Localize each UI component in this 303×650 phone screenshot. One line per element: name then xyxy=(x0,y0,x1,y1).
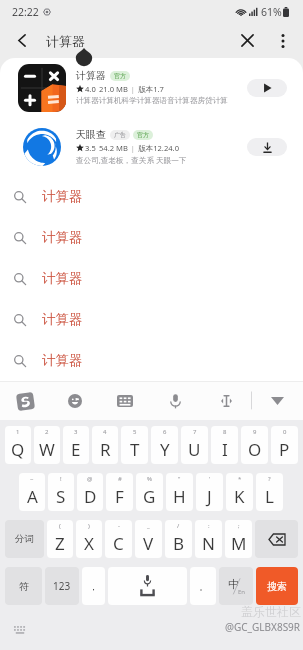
staticText: _ xyxy=(147,522,150,530)
staticText: ? xyxy=(268,475,271,483)
staticText: 版本12.24.0 xyxy=(138,143,179,153)
button[interactable]: 6 xyxy=(151,426,178,464)
button[interactable]: : xyxy=(195,520,222,558)
button[interactable]: ( xyxy=(47,520,73,558)
button[interactable]: _ xyxy=(135,520,162,558)
staticText: ~ xyxy=(30,475,34,483)
staticText: | xyxy=(131,85,135,94)
button[interactable]: 计算器 xyxy=(0,258,303,299)
button[interactable]: ~ xyxy=(19,473,45,511)
staticText: ) xyxy=(88,522,90,530)
button[interactable]: 天眼查 xyxy=(0,117,303,176)
button[interactable]: Close xyxy=(230,23,264,58)
button[interactable]: ) xyxy=(76,520,102,558)
staticText: G xyxy=(143,485,156,508)
button[interactable]: 搜索 xyxy=(256,567,298,605)
button[interactable]: Play video xyxy=(247,79,287,97)
staticText: 。 xyxy=(199,581,208,592)
button[interactable]: % xyxy=(136,473,163,511)
button[interactable]: " xyxy=(166,473,193,511)
staticText: P xyxy=(279,438,290,461)
button[interactable]: 4 xyxy=(92,426,118,464)
staticText: S xyxy=(56,485,66,508)
button[interactable]: - xyxy=(105,520,132,558)
staticText: I xyxy=(222,438,228,461)
staticText: N xyxy=(202,532,215,555)
button[interactable]: * xyxy=(226,473,253,511)
button[interactable]: 计算器 xyxy=(0,340,303,381)
button[interactable]: 计算器 xyxy=(0,217,303,258)
staticText: 2 xyxy=(45,428,49,436)
staticText: Z xyxy=(55,532,65,555)
staticText: 7 xyxy=(193,428,197,436)
button[interactable]: ' xyxy=(196,473,223,511)
button[interactable]: 符 xyxy=(5,567,42,605)
staticText: 3 xyxy=(74,428,78,436)
button[interactable]: ? xyxy=(256,473,283,511)
button[interactable]: ! xyxy=(48,473,74,511)
staticText: Y xyxy=(160,438,170,461)
button[interactable]: 8 xyxy=(211,426,238,464)
button[interactable]: 计算器 xyxy=(0,58,303,117)
staticText: ( xyxy=(59,522,61,530)
button[interactable]: 7 xyxy=(181,426,208,464)
staticText: ! xyxy=(60,475,62,483)
button[interactable]: Move cursor xyxy=(201,382,252,420)
button[interactable]: More options xyxy=(270,23,296,58)
staticText: X xyxy=(84,532,94,555)
button[interactable]: Backspace xyxy=(255,520,298,558)
button[interactable]: @ xyxy=(77,473,103,511)
staticText: @GC_GLBX8S9R xyxy=(225,620,301,634)
staticText: V xyxy=(143,532,154,555)
button[interactable]: 2 xyxy=(34,426,60,464)
button[interactable]: 计算器 xyxy=(0,299,303,340)
button[interactable]: Emoji xyxy=(50,382,100,420)
button[interactable]: 中 xyxy=(219,567,253,605)
button[interactable]: 9 xyxy=(241,426,268,464)
staticText: # xyxy=(118,475,122,483)
button[interactable]: Download xyxy=(247,138,287,156)
button[interactable]: Voice input xyxy=(150,382,201,420)
staticText: 4 xyxy=(103,428,107,436)
staticText: 分词 xyxy=(15,533,34,545)
button[interactable]: # xyxy=(106,473,133,511)
staticText: | xyxy=(131,144,135,153)
staticText: ' xyxy=(209,475,211,483)
button[interactable]: ， xyxy=(82,567,105,605)
button[interactable]: ; xyxy=(225,520,252,558)
staticText: L xyxy=(265,485,274,508)
staticText: Q xyxy=(11,438,25,461)
staticText: K xyxy=(234,485,245,508)
staticText: En xyxy=(238,588,246,596)
button[interactable]: Back xyxy=(8,23,36,58)
button[interactable]: 1 xyxy=(5,426,31,464)
button[interactable]: 计算器 xyxy=(0,176,303,217)
staticText: ; xyxy=(238,522,240,530)
button[interactable]: 0 xyxy=(271,426,298,464)
button[interactable]: 分词 xyxy=(5,520,44,558)
staticText: 54.2 MB xyxy=(99,143,128,153)
button[interactable]: 。 xyxy=(190,567,216,605)
button[interactable]: / xyxy=(165,520,192,558)
staticText: 0 xyxy=(283,428,287,436)
staticText: % xyxy=(147,475,152,483)
staticText: W xyxy=(39,438,55,461)
staticText: B xyxy=(173,532,185,555)
button[interactable]: Space xyxy=(108,567,187,605)
staticText: H xyxy=(173,485,186,508)
staticText: E xyxy=(71,438,81,461)
button[interactable]: 123 xyxy=(45,567,79,605)
button[interactable]: Sogou input xyxy=(0,382,50,420)
button[interactable]: Keyboard layout xyxy=(100,382,150,420)
staticText: 计算器 xyxy=(42,270,83,287)
button[interactable]: Hide keyboard xyxy=(252,382,303,420)
button[interactable]: 5 xyxy=(121,426,148,464)
staticText: : xyxy=(208,522,210,530)
staticText: 5 xyxy=(133,428,137,436)
button[interactable]: 3 xyxy=(63,426,89,464)
staticText: T xyxy=(130,438,140,461)
staticText: 计算器 xyxy=(42,352,83,369)
staticText: 6 xyxy=(163,428,167,436)
staticText: " xyxy=(178,475,181,483)
staticText: 21.0 MB xyxy=(99,84,128,94)
